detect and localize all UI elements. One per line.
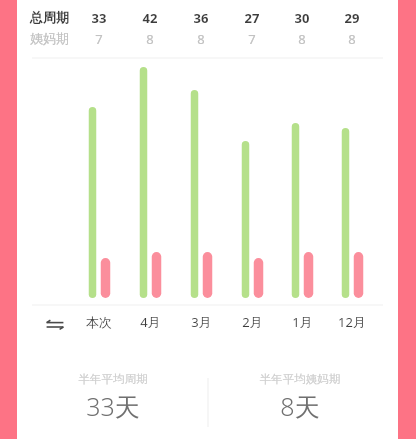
staticText: 8 — [176, 30, 226, 48]
staticText: 36 — [176, 9, 226, 27]
staticText: 42 — [125, 9, 175, 27]
staticText: 8天 — [220, 389, 380, 423]
button[interactable]: 切换 — [41, 311, 69, 339]
staticText: 半年平均姨妈期 — [220, 372, 380, 386]
staticText: 总周期 — [30, 9, 69, 25]
staticText: 8 — [277, 30, 327, 48]
staticText: 3月 — [191, 313, 212, 331]
staticText: 半年平均周期 — [33, 372, 193, 386]
staticText: 29 — [327, 9, 377, 27]
staticText: 姨妈期 — [30, 30, 69, 46]
staticText: 27 — [227, 9, 277, 27]
staticText: 12月 — [338, 313, 366, 331]
staticText: 33天 — [33, 389, 193, 423]
staticText: 7 — [227, 30, 277, 48]
staticText: 本次 — [86, 314, 112, 330]
button[interactable]: 半年平均姨妈期 — [220, 372, 380, 423]
button[interactable]: 1月 — [277, 311, 327, 333]
button[interactable]: 本次 — [74, 311, 124, 333]
staticText: 4月 — [140, 313, 161, 331]
button[interactable]: 2月 — [227, 311, 277, 333]
button[interactable]: 3月 — [176, 311, 226, 333]
staticText: 8 — [327, 30, 377, 48]
staticText: 7 — [74, 30, 124, 48]
staticText: 8 — [125, 30, 175, 48]
button[interactable]: 4月 — [125, 311, 175, 333]
staticText: 33 — [74, 9, 124, 27]
staticText: 30 — [277, 9, 327, 27]
button[interactable]: 12月 — [327, 311, 377, 333]
button[interactable]: 半年平均周期 — [33, 372, 193, 423]
staticText: 1月 — [292, 313, 313, 331]
staticText: 2月 — [242, 313, 263, 331]
